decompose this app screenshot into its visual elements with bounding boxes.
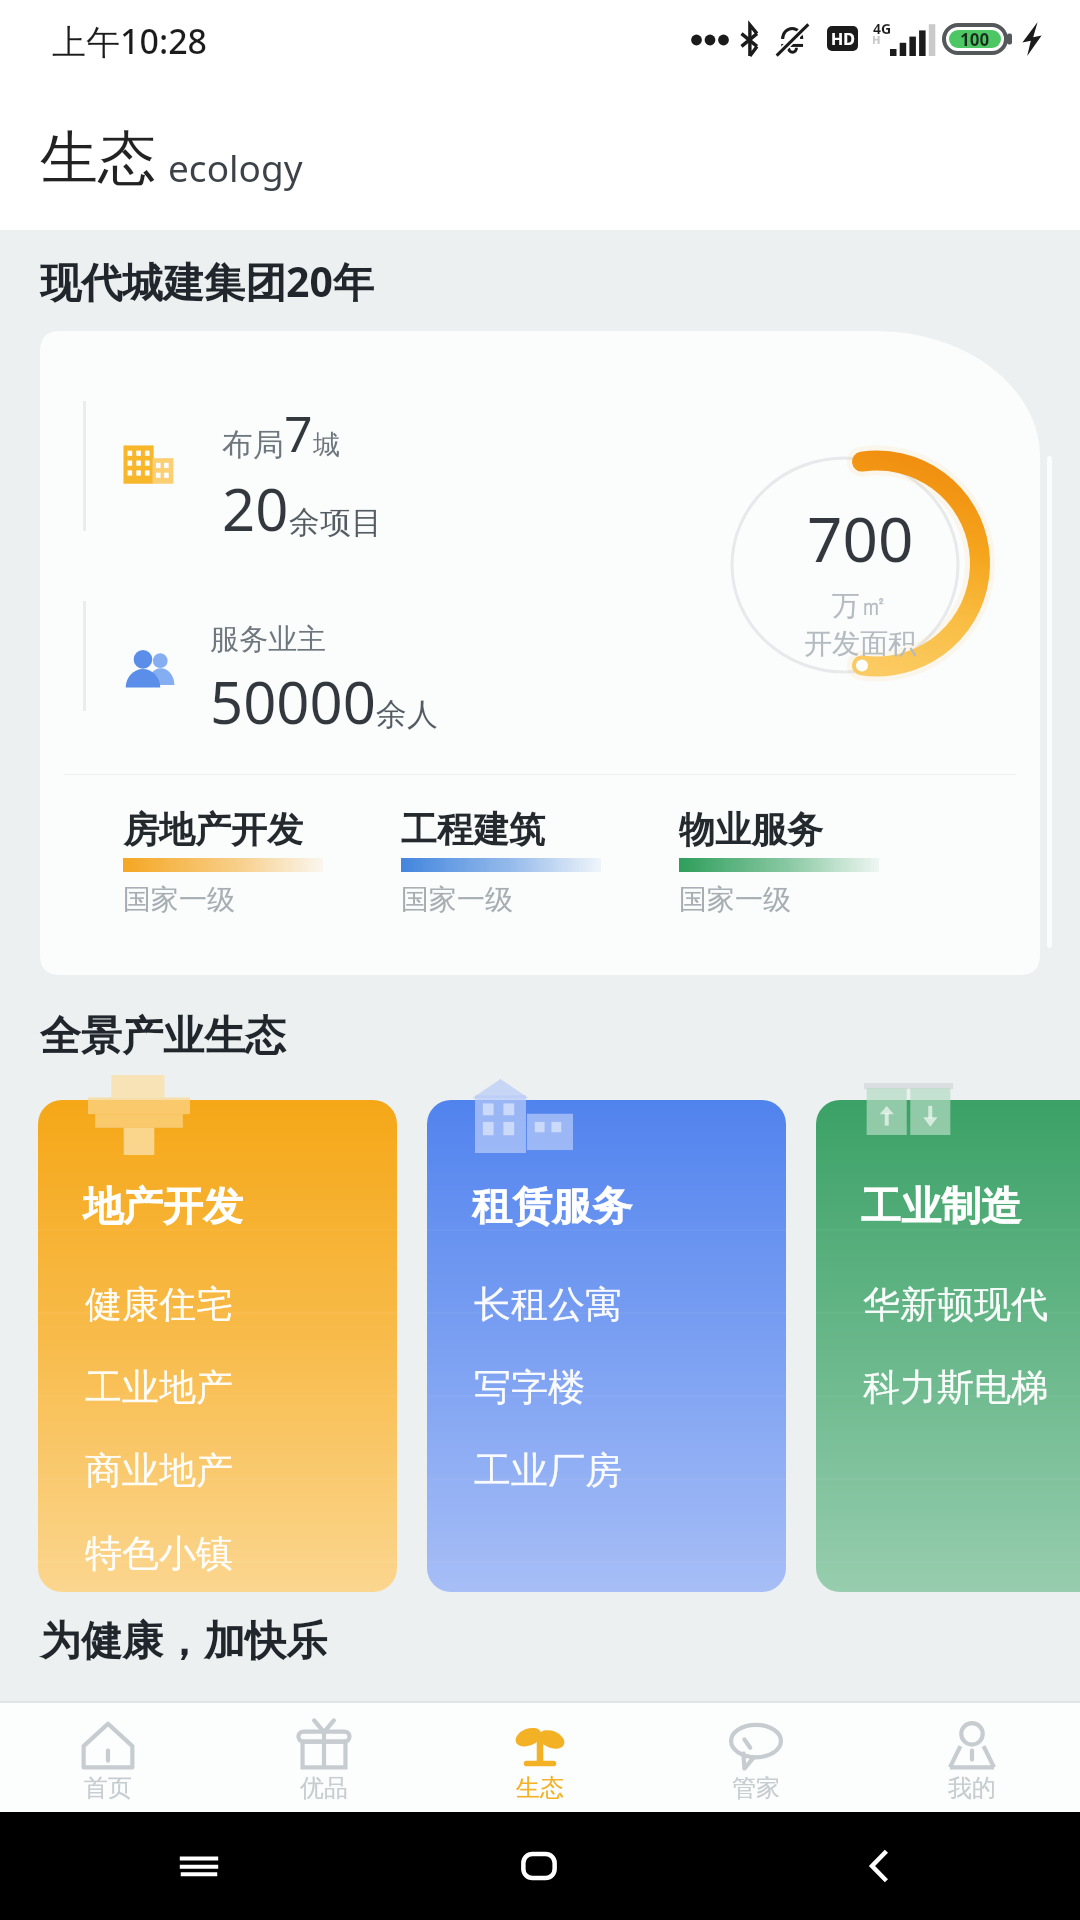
staticText: 国家一级: [401, 882, 513, 917]
staticText: 长租公寓: [474, 1281, 622, 1328]
button[interactable]: 管家: [648, 1703, 864, 1812]
staticText: 城: [313, 428, 340, 462]
staticText: 工业地产: [85, 1364, 233, 1411]
button[interactable]: 工业制造: [816, 1100, 1080, 1592]
staticText: 余人: [376, 695, 438, 734]
staticText: 优品: [300, 1773, 348, 1803]
staticText: HD: [831, 28, 855, 50]
staticText: 4G: [873, 19, 892, 38]
staticText: 全景产业生态: [40, 1011, 286, 1063]
staticText: 工业制造: [861, 1181, 1021, 1231]
staticText: 50000: [210, 662, 376, 741]
button[interactable]: 首页: [0, 1703, 216, 1812]
staticText: 首页: [84, 1773, 132, 1803]
staticText: 管家: [732, 1773, 780, 1803]
staticText: 布局: [222, 425, 284, 464]
staticText: 生态: [516, 1773, 564, 1803]
button[interactable]: 租赁服务: [427, 1100, 786, 1592]
staticText: 服务业主: [210, 621, 326, 658]
staticText: 房地产开发: [123, 807, 303, 852]
staticText: 100: [960, 28, 990, 51]
staticText: 写字楼: [474, 1364, 585, 1411]
staticText: 华新顿现代: [863, 1281, 1048, 1328]
staticText: 为健康，加快乐: [40, 1616, 327, 1668]
staticText: 科力斯电梯: [863, 1364, 1048, 1411]
button[interactable]: Home: [445, 1812, 633, 1920]
staticText: 现代城建集团20年: [40, 253, 374, 309]
staticText: 健康住宅: [85, 1281, 233, 1328]
staticText: 上午10:28: [52, 18, 208, 64]
staticText: 国家一级: [123, 882, 235, 917]
staticText: 工程建筑: [401, 807, 545, 852]
button[interactable]: 地产开发: [38, 1100, 397, 1592]
staticText: 700: [807, 496, 914, 580]
staticText: 国家一级: [679, 882, 791, 917]
staticText: 生态: [40, 122, 156, 195]
staticText: 租赁服务: [472, 1181, 632, 1231]
staticText: H: [872, 32, 881, 47]
staticText: 我的: [948, 1773, 996, 1803]
staticText: 商业地产: [85, 1447, 233, 1494]
staticText: 余项目: [289, 503, 382, 542]
staticText: 20: [222, 469, 289, 548]
button[interactable]: Back: [786, 1812, 974, 1920]
button[interactable]: 我的: [864, 1703, 1080, 1812]
staticText: 特色小镇: [85, 1530, 233, 1577]
staticText: 7: [284, 399, 313, 467]
staticText: 物业服务: [679, 807, 823, 852]
staticText: 地产开发: [83, 1181, 243, 1231]
staticText: ecology: [168, 142, 303, 192]
staticText: 开发面积: [804, 626, 916, 661]
button[interactable]: 优品: [216, 1703, 432, 1812]
staticText: 工业厂房: [474, 1447, 622, 1494]
staticText: 万㎡: [832, 588, 888, 623]
button[interactable]: 生态: [432, 1703, 648, 1812]
button[interactable]: Recent apps: [105, 1812, 292, 1920]
